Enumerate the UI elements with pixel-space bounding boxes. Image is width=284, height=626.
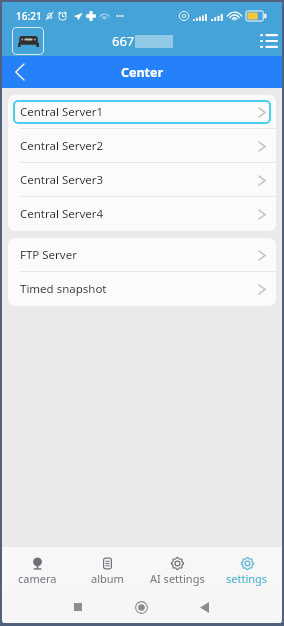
staticText: AI settings <box>150 571 205 586</box>
staticText: 16:21 <box>16 9 42 23</box>
staticText: camera <box>18 571 57 586</box>
button[interactable]: Device preview <box>12 27 44 55</box>
button[interactable]: Central Server2 <box>8 129 276 163</box>
button[interactable]: FTP Server <box>8 238 276 272</box>
staticText: Center <box>121 64 164 81</box>
button[interactable]: AI settings <box>142 547 212 590</box>
button[interactable]: Central Server3 <box>8 163 276 197</box>
staticText: Central Server3 <box>20 172 104 188</box>
button[interactable]: Central Server4 <box>8 197 276 231</box>
button[interactable]: List view <box>256 28 282 54</box>
staticText: album <box>91 571 124 586</box>
staticText: Timed snapshot <box>20 281 107 297</box>
button[interactable]: Timed snapshot <box>8 272 276 306</box>
button[interactable]: Settings <box>212 547 282 590</box>
staticText: Central Server2 <box>20 138 104 154</box>
staticText: 667 <box>112 32 135 50</box>
button[interactable]: Home <box>121 594 161 620</box>
staticText: FTP Server <box>20 247 77 263</box>
button[interactable]: Back <box>5 58 33 86</box>
button[interactable]: Back <box>184 594 224 620</box>
staticText: settings <box>226 571 268 586</box>
button[interactable]: Recents <box>58 594 98 620</box>
staticText: Central Server4 <box>20 206 104 222</box>
button[interactable]: Central Server1 <box>8 95 276 129</box>
button[interactable]: Camera <box>2 547 72 590</box>
staticText: Central Server1 <box>20 104 104 120</box>
button[interactable]: Album <box>72 547 142 590</box>
